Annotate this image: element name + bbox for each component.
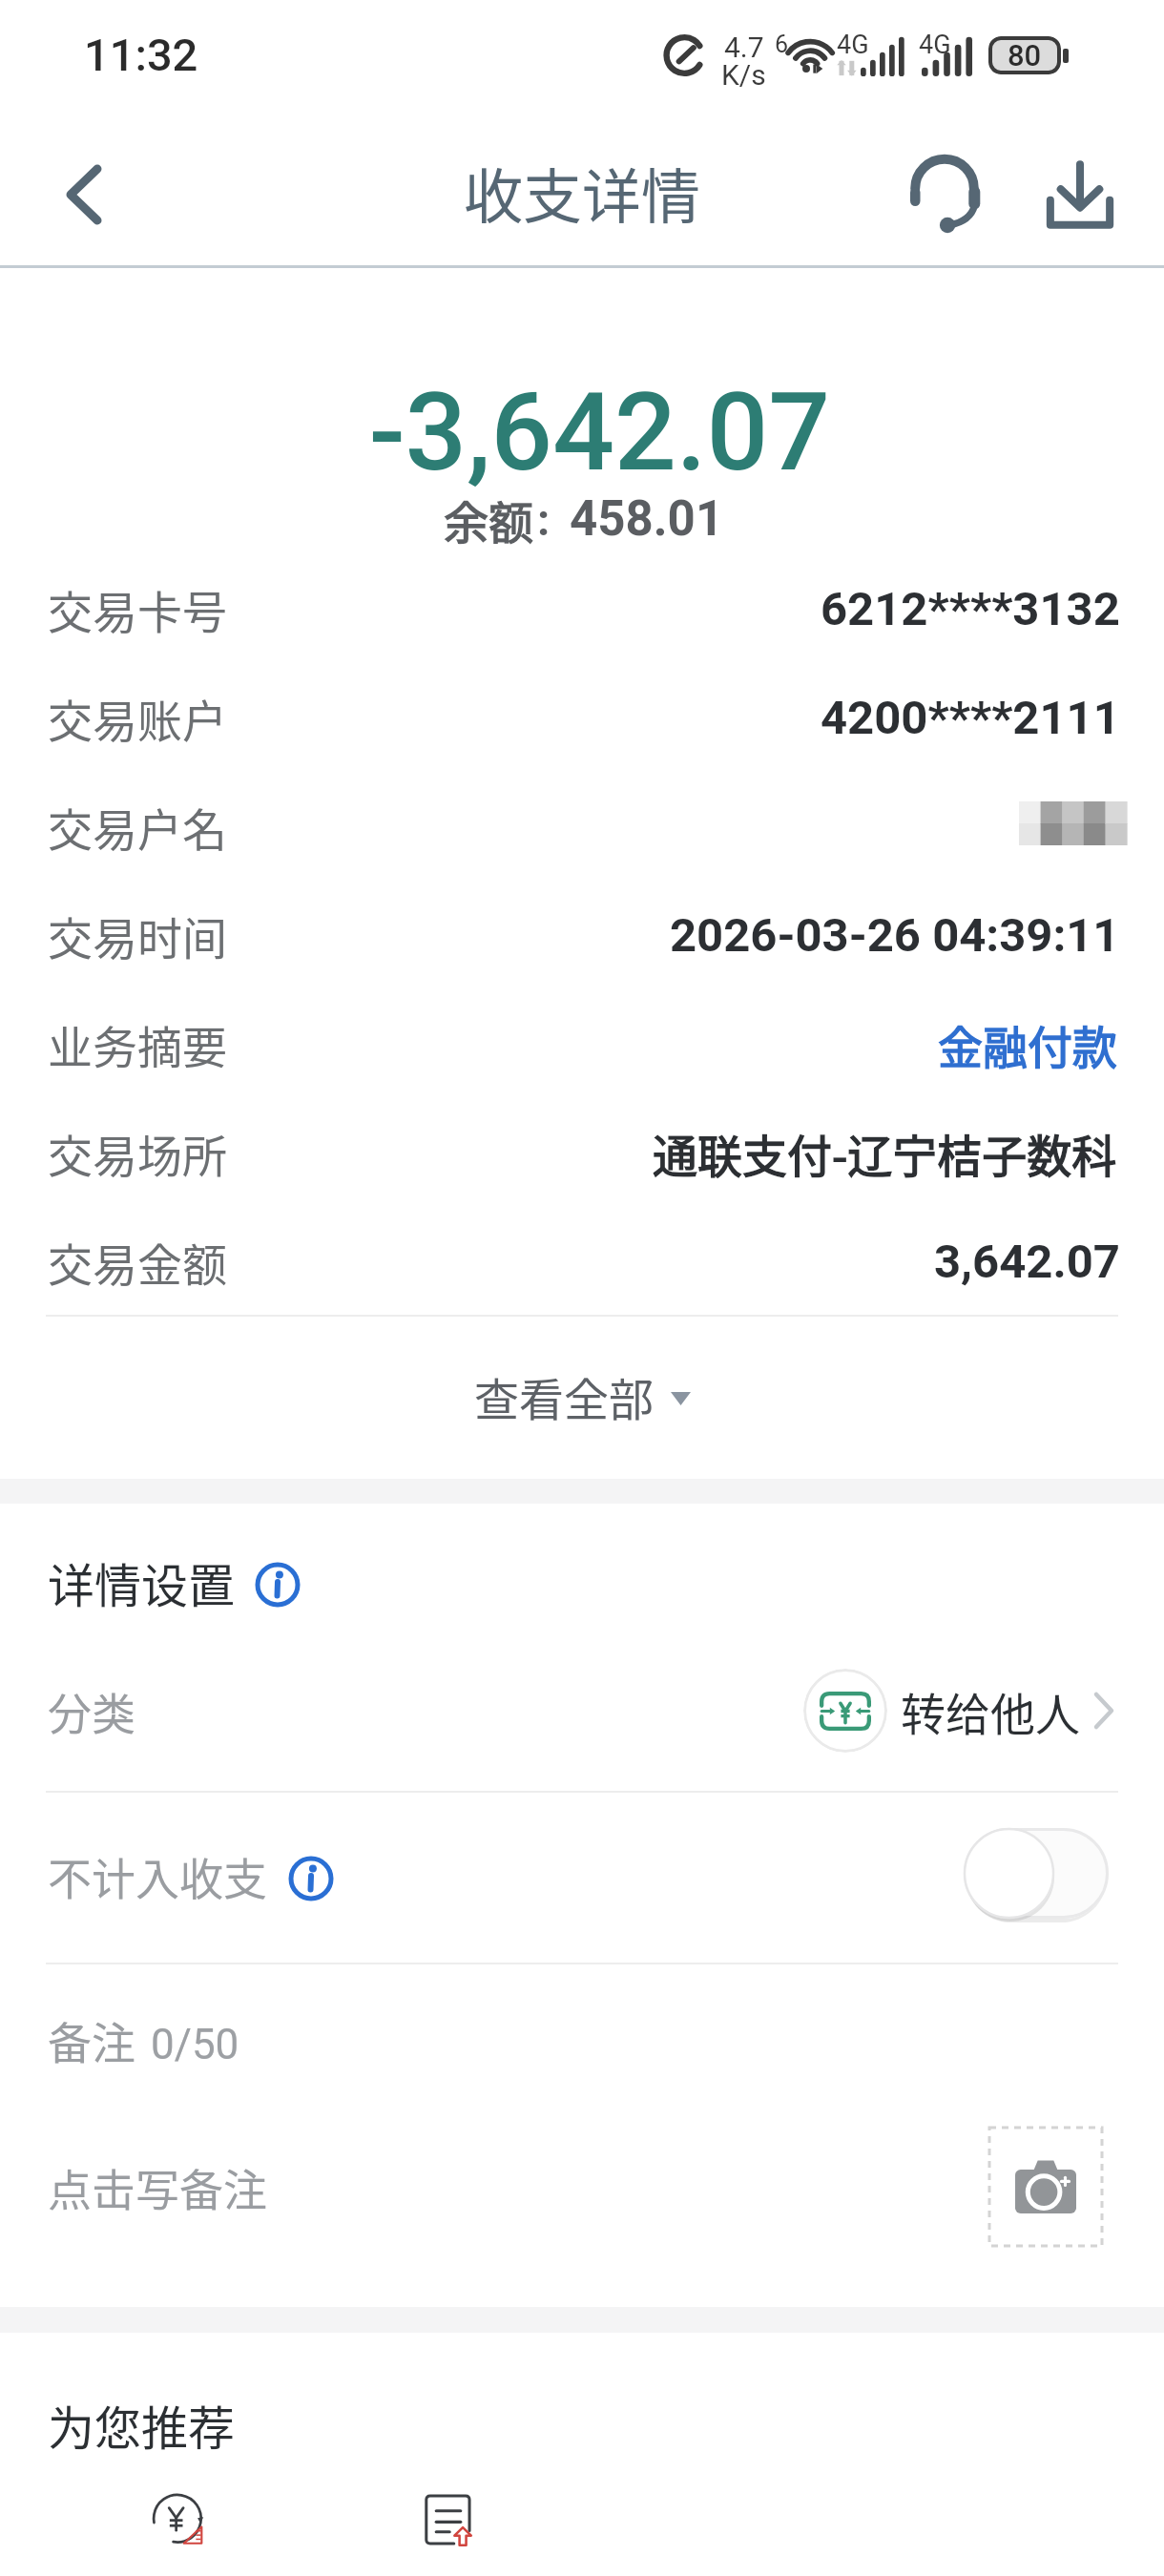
staticText: -3,642.07 — [369, 368, 831, 496]
button[interactable]: Bill — [391, 2462, 506, 2576]
button[interactable]: Add photo — [989, 2128, 1102, 2246]
staticText: : — [537, 493, 551, 546]
staticText: 交易金额 — [48, 1229, 227, 1294]
staticText: 交易账户 — [48, 685, 227, 750]
staticText: 6 — [775, 31, 789, 58]
button[interactable]: Download — [1023, 137, 1137, 252]
staticText: 交易卡号 — [48, 576, 227, 641]
staticText: 4.7 — [724, 31, 764, 64]
staticText: 4G — [919, 30, 951, 60]
button[interactable]: Customer service — [887, 137, 1002, 252]
staticText: 业务摘要 — [48, 1011, 227, 1076]
staticText: 交易户名 — [48, 794, 227, 859]
button[interactable]: Back — [29, 139, 139, 250]
button[interactable]: 不计入收支 — [0, 1790, 1164, 1962]
staticText: 不计入收支 — [48, 1844, 267, 1908]
staticText: 备注 — [48, 2008, 135, 2072]
staticText: 80 — [1008, 38, 1042, 73]
staticText: 0/50 — [151, 2020, 239, 2069]
staticText: 收支详情 — [464, 150, 701, 236]
staticText: K/s — [721, 58, 766, 92]
staticText: 4G — [837, 30, 869, 60]
staticText: 458.01 — [570, 490, 724, 548]
staticText: 交易时间 — [48, 903, 227, 967]
staticText: 转给他人 — [901, 1678, 1080, 1743]
staticText: 11:32 — [84, 29, 198, 81]
staticText: 查看全部 — [474, 1363, 654, 1428]
button[interactable]: Exclude from income and expenses toggle — [964, 1828, 1109, 1923]
staticText: 详情设置 — [48, 1548, 236, 1616]
staticText: 4200****2111 — [821, 691, 1120, 745]
staticText: 3,642.07 — [934, 1235, 1120, 1289]
staticText: 点击写备注 — [48, 2155, 267, 2219]
staticText: 为您推荐 — [48, 2391, 236, 2459]
staticText: 余额 — [444, 487, 533, 551]
staticText: 6212****3132 — [821, 582, 1120, 636]
button[interactable]: 查看全部 — [0, 1324, 1164, 1467]
button[interactable]: 点击写备注 — [0, 2120, 1164, 2254]
staticText: 2026-03-26 04:39:11 — [670, 908, 1120, 963]
staticText: 通联支付-辽宁桔子数科 — [653, 1120, 1117, 1185]
staticText: 分类 — [48, 1679, 135, 1743]
staticText: 交易场所 — [48, 1120, 227, 1185]
button[interactable]: 分类 — [0, 1639, 1164, 1782]
staticText: 金融付款 — [938, 1011, 1117, 1076]
button[interactable]: Loan — [123, 2462, 238, 2576]
